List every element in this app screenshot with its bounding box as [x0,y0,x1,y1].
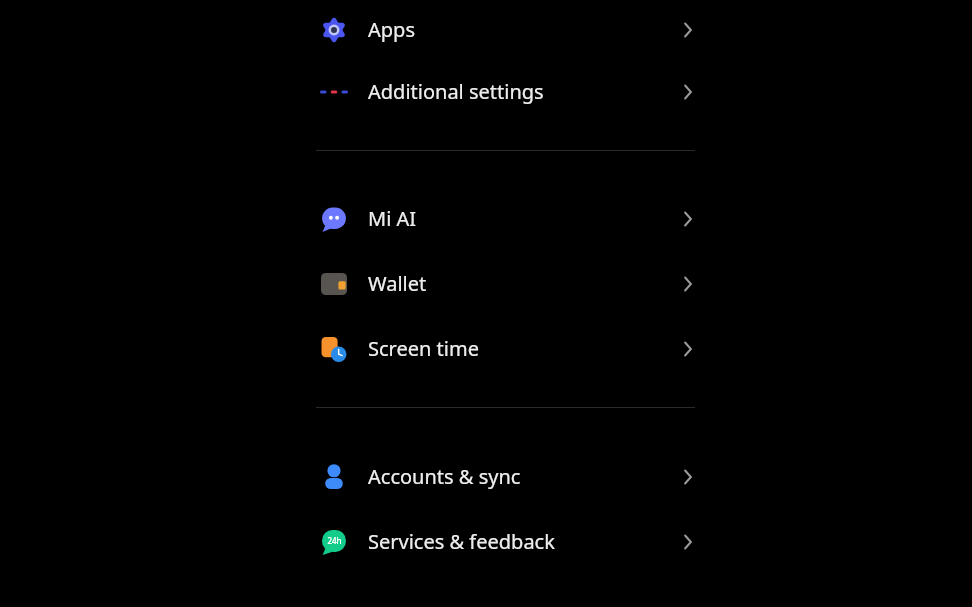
other: Services & feedback [673,527,703,557]
staticText: Mi AI [368,205,417,232]
staticText: Wallet [368,270,427,297]
staticText: Apps [368,16,415,43]
button[interactable]: Accounts & sync [0,444,972,509]
button[interactable]: Screen time [0,316,972,381]
button[interactable]: Apps [0,0,972,59]
button[interactable]: Wallet [0,251,972,316]
staticText: Accounts & sync [368,463,521,490]
other: Screen time [673,334,703,364]
button[interactable]: Additional settings [0,59,972,124]
other: Wallet [673,269,703,299]
button[interactable]: Mi AI [0,186,972,251]
staticText: 24h [327,535,342,546]
other: Apps [673,15,703,45]
staticText: Services & feedback [368,528,555,555]
other: Accounts & sync [673,462,703,492]
other: Additional settings [673,77,703,107]
other: Mi AI [673,204,703,234]
button[interactable]: 24h [0,509,972,574]
staticText: Screen time [368,335,479,362]
staticText: Additional settings [368,78,544,105]
